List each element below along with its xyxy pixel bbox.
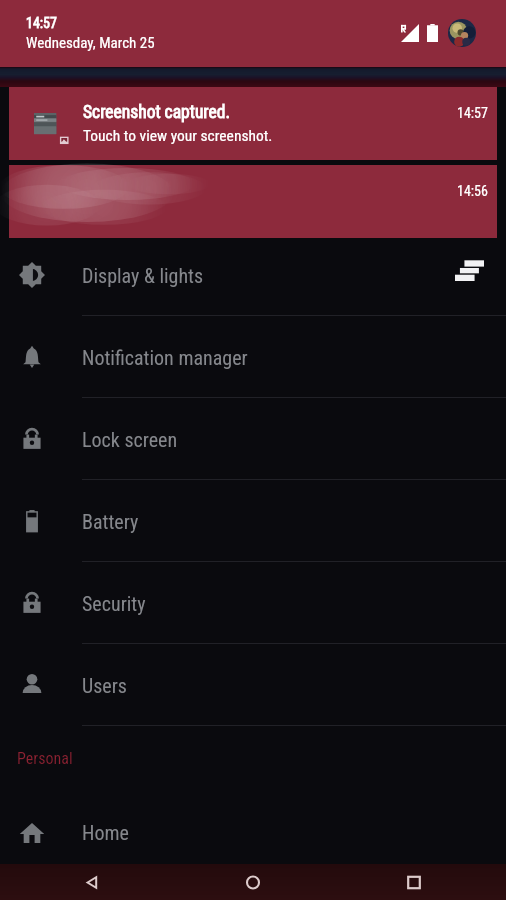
staticText: 14:57 [457, 105, 488, 121]
button[interactable]: Screenshot captured. [9, 87, 497, 160]
staticText: Home [82, 821, 129, 844]
button[interactable]: Security [0, 562, 506, 644]
button[interactable]: Home [225, 864, 281, 900]
staticText: Battery [82, 510, 139, 533]
button[interactable]: Lock screen [0, 398, 506, 480]
staticText: Security [82, 592, 146, 615]
staticText: Notification manager [82, 346, 248, 369]
staticText: Personal [17, 749, 73, 768]
button[interactable]: Recent apps [386, 864, 442, 900]
staticText: Wednesday, March 25 [26, 34, 155, 52]
button[interactable]: Home [0, 791, 506, 874]
button[interactable]: Notification manager [0, 316, 506, 398]
button[interactable]: Users [0, 644, 506, 726]
button[interactable]: Display & lights [0, 234, 506, 316]
staticText: Screenshot captured. [83, 102, 231, 123]
button[interactable]: 14:56 [9, 165, 497, 238]
staticText: Lock screen [82, 428, 178, 451]
staticText: 14:57 [26, 15, 57, 31]
staticText: 14:56 [457, 183, 488, 199]
button[interactable]: Battery [0, 480, 506, 562]
staticText: Users [82, 674, 127, 697]
staticText: Touch to view your screenshot. [83, 127, 273, 145]
staticText: Display & lights [82, 264, 204, 287]
button[interactable]: Back [64, 864, 120, 900]
